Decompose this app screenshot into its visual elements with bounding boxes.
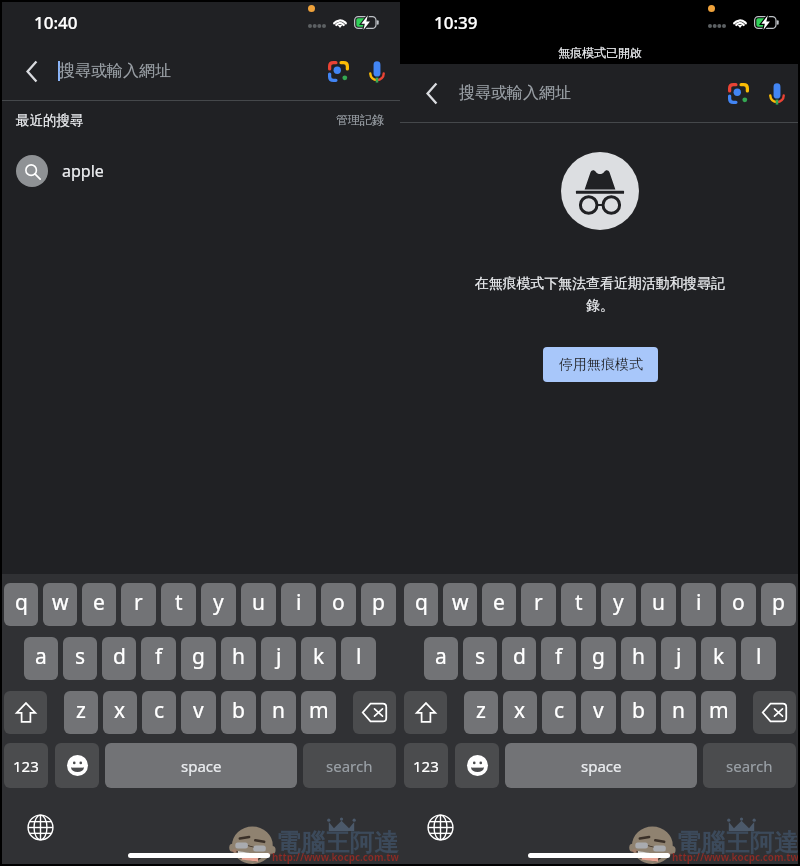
button[interactable]: d: [502, 637, 536, 680]
button[interactable]: n: [661, 691, 696, 734]
staticText: n: [272, 696, 285, 725]
button[interactable]: w: [43, 583, 77, 626]
staticText: 電腦王阿達: [276, 827, 399, 858]
button[interactable]: Emoji: [55, 743, 99, 788]
button[interactable]: l: [741, 637, 776, 680]
button[interactable]: c: [142, 691, 176, 734]
staticText: r: [534, 588, 543, 617]
button[interactable]: f: [141, 637, 176, 680]
button[interactable]: Voice search: [756, 73, 797, 114]
button[interactable]: search: [703, 743, 796, 788]
button[interactable]: q: [404, 583, 438, 626]
staticText: http://www.kocpc.com.tw: [672, 851, 799, 864]
button[interactable]: h: [621, 637, 656, 680]
button[interactable]: w: [443, 583, 477, 626]
button[interactable]: r: [521, 583, 556, 626]
button[interactable]: c: [542, 691, 576, 734]
button[interactable]: space: [505, 743, 697, 788]
button[interactable]: f: [541, 637, 576, 680]
button[interactable]: Back: [411, 73, 451, 113]
button[interactable]: k: [701, 637, 736, 680]
staticText: search: [726, 756, 773, 776]
staticText: 電腦王阿達: [676, 827, 799, 858]
button[interactable]: z: [64, 691, 98, 734]
staticText: r: [134, 588, 143, 617]
button[interactable]: u: [641, 583, 676, 626]
button[interactable]: o: [321, 583, 356, 626]
button[interactable]: s: [63, 637, 97, 680]
button[interactable]: p: [361, 583, 396, 626]
staticText: space: [181, 756, 222, 776]
staticText: e: [493, 588, 505, 617]
button[interactable]: Change keyboard language: [426, 813, 454, 841]
button[interactable]: k: [301, 637, 336, 680]
button[interactable]: a: [424, 637, 458, 680]
staticText: w: [452, 588, 469, 617]
button[interactable]: l: [341, 637, 376, 680]
button[interactable]: m: [701, 691, 736, 734]
button[interactable]: v: [181, 691, 216, 734]
staticText: o: [332, 588, 345, 617]
button[interactable]: Back: [11, 51, 51, 91]
button[interactable]: p: [761, 583, 796, 626]
button[interactable]: t: [561, 583, 596, 626]
button[interactable]: 123: [4, 743, 48, 788]
button[interactable]: search: [303, 743, 396, 788]
staticText: c: [554, 696, 565, 725]
button[interactable]: t: [161, 583, 196, 626]
button[interactable]: e: [82, 583, 116, 626]
button[interactable]: i: [681, 583, 716, 626]
button[interactable]: Emoji: [455, 743, 499, 788]
button[interactable]: x: [103, 691, 137, 734]
staticText: v: [593, 696, 604, 725]
staticText: q: [415, 588, 428, 617]
button[interactable]: x: [503, 691, 537, 734]
button[interactable]: b: [221, 691, 256, 734]
button[interactable]: 停用無痕模式: [543, 347, 658, 382]
staticText: n: [672, 696, 685, 725]
button[interactable]: g: [181, 637, 216, 680]
button[interactable]: e: [482, 583, 516, 626]
staticText: p: [372, 588, 385, 617]
staticText: o: [732, 588, 745, 617]
button[interactable]: Google Lens: [718, 73, 759, 114]
button[interactable]: 管理記錄: [320, 101, 400, 135]
staticText: b: [632, 696, 645, 725]
button[interactable]: y: [601, 583, 636, 626]
staticText: v: [193, 696, 204, 725]
button[interactable]: Backspace: [353, 691, 396, 734]
button[interactable]: n: [261, 691, 296, 734]
staticText: s: [75, 642, 86, 671]
staticText: l: [356, 642, 362, 671]
button[interactable]: z: [464, 691, 498, 734]
staticText: i: [696, 588, 702, 617]
staticText: 在無痕模式下無法查看近期活動和搜尋記錄。: [472, 275, 728, 314]
button[interactable]: y: [201, 583, 236, 626]
button[interactable]: space: [105, 743, 297, 788]
button[interactable]: d: [102, 637, 136, 680]
button[interactable]: q: [4, 583, 38, 626]
button[interactable]: u: [241, 583, 276, 626]
button[interactable]: Change keyboard language: [26, 813, 54, 841]
staticText: e: [93, 588, 105, 617]
button[interactable]: r: [121, 583, 156, 626]
button[interactable]: Backspace: [753, 691, 796, 734]
button[interactable]: s: [463, 637, 497, 680]
button[interactable]: 123: [404, 743, 448, 788]
button[interactable]: Google Lens: [318, 51, 359, 92]
button[interactable]: v: [581, 691, 616, 734]
staticText: a: [35, 642, 47, 671]
button[interactable]: a: [24, 637, 58, 680]
button[interactable]: Shift: [404, 691, 447, 734]
button[interactable]: i: [281, 583, 316, 626]
button[interactable]: Shift: [4, 691, 47, 734]
button[interactable]: b: [621, 691, 656, 734]
button[interactable]: j: [261, 637, 296, 680]
button[interactable]: h: [221, 637, 256, 680]
button[interactable]: g: [581, 637, 616, 680]
button[interactable]: j: [661, 637, 696, 680]
button[interactable]: Voice search: [356, 51, 397, 92]
button[interactable]: o: [721, 583, 756, 626]
button[interactable]: apple: [0, 144, 400, 197]
button[interactable]: m: [301, 691, 336, 734]
